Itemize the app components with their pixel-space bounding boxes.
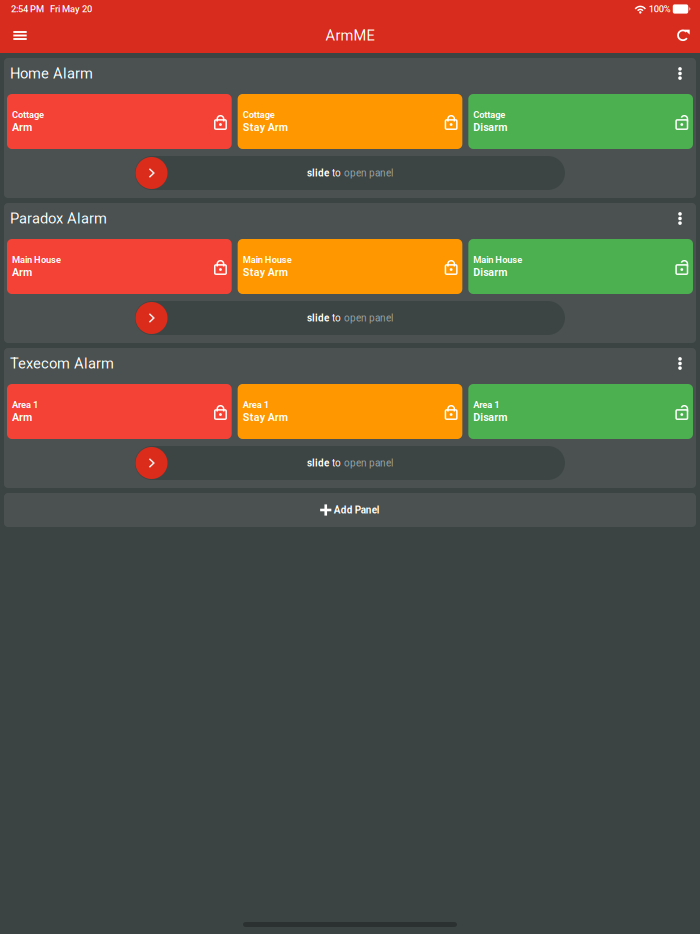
staticText: to bbox=[332, 457, 341, 469]
button[interactable]: Area 1 bbox=[238, 384, 462, 439]
staticText: Area 1 bbox=[243, 399, 269, 410]
staticText: Stay Arm bbox=[243, 121, 288, 134]
button[interactable]: Main House bbox=[238, 239, 462, 294]
staticText: slide bbox=[307, 167, 329, 179]
staticText: Cottage bbox=[12, 109, 44, 120]
staticText: to bbox=[332, 312, 341, 324]
staticText: Disarm bbox=[473, 266, 507, 279]
staticText: slide bbox=[307, 312, 329, 324]
staticText: Cottage bbox=[473, 109, 505, 120]
button[interactable]: Add Panel bbox=[4, 493, 696, 527]
staticText: Add Panel bbox=[334, 504, 380, 516]
staticText: Main House bbox=[12, 254, 61, 265]
staticText: Arm bbox=[12, 411, 32, 424]
staticText: Main House bbox=[243, 254, 292, 265]
staticText: Home Alarm bbox=[10, 65, 93, 82]
staticText: Arm bbox=[12, 121, 32, 134]
staticText: open panel bbox=[344, 457, 393, 469]
button[interactable]: Cottage bbox=[7, 94, 232, 149]
staticText: Fri May 20 bbox=[44, 3, 92, 14]
staticText: Stay Arm bbox=[243, 411, 288, 424]
button[interactable]: Main House bbox=[468, 239, 693, 294]
staticText: ArmME bbox=[325, 27, 374, 44]
button[interactable]: Panel options bbox=[669, 207, 691, 229]
staticText: Disarm bbox=[473, 121, 507, 134]
staticText: Main House bbox=[473, 254, 522, 265]
staticText: Cottage bbox=[243, 109, 275, 120]
staticText: Area 1 bbox=[12, 399, 38, 410]
button[interactable]: Menu bbox=[7, 23, 33, 47]
staticText: 2:54 PM bbox=[11, 3, 44, 14]
button[interactable]: slide bbox=[135, 446, 565, 480]
button[interactable]: Cottage bbox=[238, 94, 462, 149]
staticText: to bbox=[332, 167, 341, 179]
button[interactable]: Panel options bbox=[669, 352, 691, 374]
staticText: Paradox Alarm bbox=[10, 210, 107, 227]
button[interactable]: Refresh bbox=[677, 29, 690, 42]
staticText: Texecom Alarm bbox=[10, 355, 114, 372]
button[interactable]: Cottage bbox=[468, 94, 693, 149]
button[interactable]: Area 1 bbox=[7, 384, 232, 439]
button[interactable]: slide bbox=[135, 156, 565, 190]
staticText: slide bbox=[307, 457, 329, 469]
button[interactable]: slide bbox=[135, 301, 565, 335]
staticText: Stay Arm bbox=[243, 266, 288, 279]
staticText: Area 1 bbox=[473, 399, 499, 410]
staticText: Disarm bbox=[473, 411, 507, 424]
staticText: 100% bbox=[647, 3, 673, 14]
button[interactable]: Main House bbox=[7, 239, 232, 294]
staticText: open panel bbox=[344, 167, 393, 179]
staticText: open panel bbox=[344, 312, 393, 324]
staticText: Arm bbox=[12, 266, 32, 279]
button[interactable]: Panel options bbox=[669, 62, 691, 84]
button[interactable]: Area 1 bbox=[468, 384, 693, 439]
